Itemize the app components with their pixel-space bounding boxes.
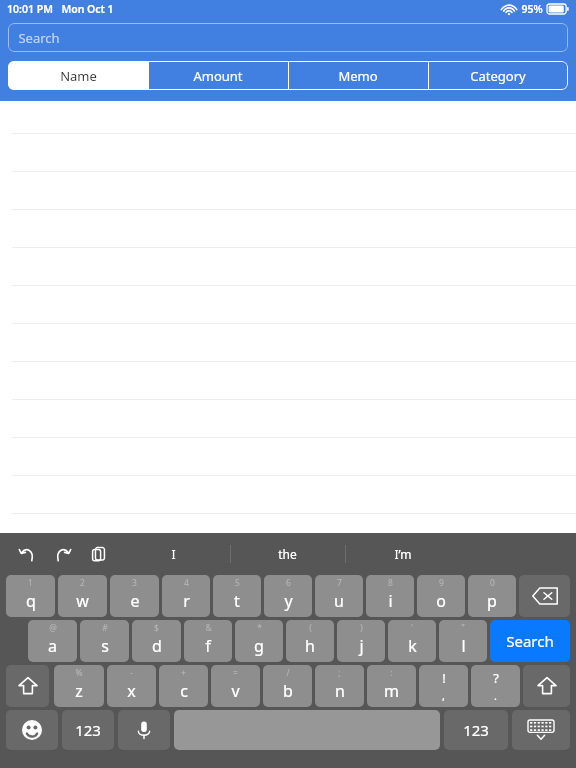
button[interactable]: Name <box>8 61 148 90</box>
staticText: + <box>181 667 186 679</box>
staticText: 10:01 PM <box>7 2 53 16</box>
button[interactable]: Backspace <box>519 575 570 617</box>
button[interactable]: - <box>107 665 156 707</box>
staticText: f <box>205 635 211 657</box>
button[interactable]: Paste <box>88 543 110 565</box>
button[interactable]: Undo <box>16 543 38 565</box>
staticText: / <box>286 667 290 679</box>
button[interactable]: Amount <box>148 61 288 90</box>
staticText: I’m <box>394 546 412 562</box>
staticText: j <box>359 635 364 657</box>
button[interactable]: ‘ <box>388 620 436 662</box>
button[interactable]: + <box>159 665 208 707</box>
staticText: n <box>335 680 345 702</box>
button[interactable]: Emoji <box>6 710 58 750</box>
staticText: y <box>284 590 293 612</box>
button[interactable]: I <box>116 533 230 575</box>
button[interactable]: 8 <box>366 575 414 617</box>
staticText: Search <box>18 29 60 47</box>
button[interactable]: 2 <box>58 575 107 617</box>
staticText: l <box>461 635 466 657</box>
staticText: # <box>102 622 108 634</box>
staticText: & <box>205 622 212 634</box>
button[interactable]: 9 <box>417 575 465 617</box>
button[interactable]: * <box>235 620 283 662</box>
button[interactable]: % <box>54 665 104 707</box>
button[interactable]: @ <box>28 620 77 662</box>
staticText: b <box>283 680 293 702</box>
button[interactable]: 6 <box>264 575 312 617</box>
button[interactable]: Dictation <box>118 710 170 750</box>
staticText: : <box>390 667 393 679</box>
button[interactable]: ” <box>439 620 487 662</box>
button[interactable]: 1 <box>6 575 55 617</box>
staticText: 9 <box>439 577 444 589</box>
staticText: @ <box>49 622 57 634</box>
button[interactable]: ? <box>471 665 520 707</box>
button[interactable]: 123 <box>444 710 508 750</box>
button[interactable]: 5 <box>213 575 261 617</box>
button[interactable]: $ <box>132 620 181 662</box>
button[interactable]: Redo <box>52 543 74 565</box>
staticText: Amount <box>193 67 243 85</box>
staticText: h <box>305 635 315 657</box>
button[interactable]: Search <box>490 620 570 662</box>
staticText: % <box>75 667 83 679</box>
button[interactable]: 3 <box>110 575 159 617</box>
staticText: u <box>334 590 344 612</box>
staticText: Memo <box>338 67 378 85</box>
button[interactable]: = <box>211 665 260 707</box>
button[interactable]: Hide keyboard <box>512 710 570 750</box>
staticText: r <box>183 590 190 612</box>
button[interactable]: : <box>367 665 416 707</box>
button[interactable]: 4 <box>162 575 210 617</box>
button[interactable]: Shift <box>523 665 570 707</box>
button[interactable]: Memo <box>288 61 428 90</box>
staticText: ! <box>442 669 446 687</box>
button[interactable]: 123 <box>62 710 114 750</box>
staticText: Name <box>60 67 97 85</box>
staticText: 123 <box>463 720 489 740</box>
staticText: q <box>26 590 36 612</box>
staticText: ( <box>309 622 312 634</box>
staticText: 8 <box>388 577 393 589</box>
button[interactable]: Shift <box>6 665 49 707</box>
staticText: 7 <box>337 577 342 589</box>
staticText: , <box>442 688 445 703</box>
staticText: w <box>76 590 89 612</box>
staticText: m <box>384 680 399 702</box>
button[interactable]: ( <box>286 620 334 662</box>
staticText: - <box>130 667 133 679</box>
staticText: the <box>278 546 297 562</box>
staticText: ” <box>461 622 465 634</box>
button[interactable]: & <box>184 620 232 662</box>
staticText: d <box>152 635 162 657</box>
button[interactable]: / <box>263 665 312 707</box>
staticText: ) <box>360 622 363 634</box>
staticText: 0 <box>490 577 495 589</box>
staticText: Search <box>506 631 554 651</box>
staticText: e <box>130 590 140 612</box>
button[interactable]: Category <box>428 61 568 90</box>
button[interactable]: 0 <box>468 575 516 617</box>
staticText: 123 <box>75 720 101 740</box>
staticText: t <box>234 590 240 612</box>
staticText: p <box>487 590 497 612</box>
staticText: g <box>254 635 264 657</box>
button[interactable]: Search <box>8 23 568 52</box>
staticText: 3 <box>132 577 137 589</box>
staticText: c <box>180 680 188 702</box>
staticText: i <box>388 590 393 612</box>
button[interactable]: I’m <box>345 533 460 575</box>
staticText: 6 <box>286 577 291 589</box>
button[interactable]: ; <box>315 665 364 707</box>
button[interactable]: # <box>80 620 129 662</box>
button[interactable]: ) <box>337 620 385 662</box>
button[interactable]: ! <box>419 665 468 707</box>
button[interactable]: 7 <box>315 575 363 617</box>
staticText: a <box>48 635 57 657</box>
button[interactable]: the <box>230 533 345 575</box>
staticText: 1 <box>28 577 33 589</box>
staticText: ; <box>338 667 341 679</box>
